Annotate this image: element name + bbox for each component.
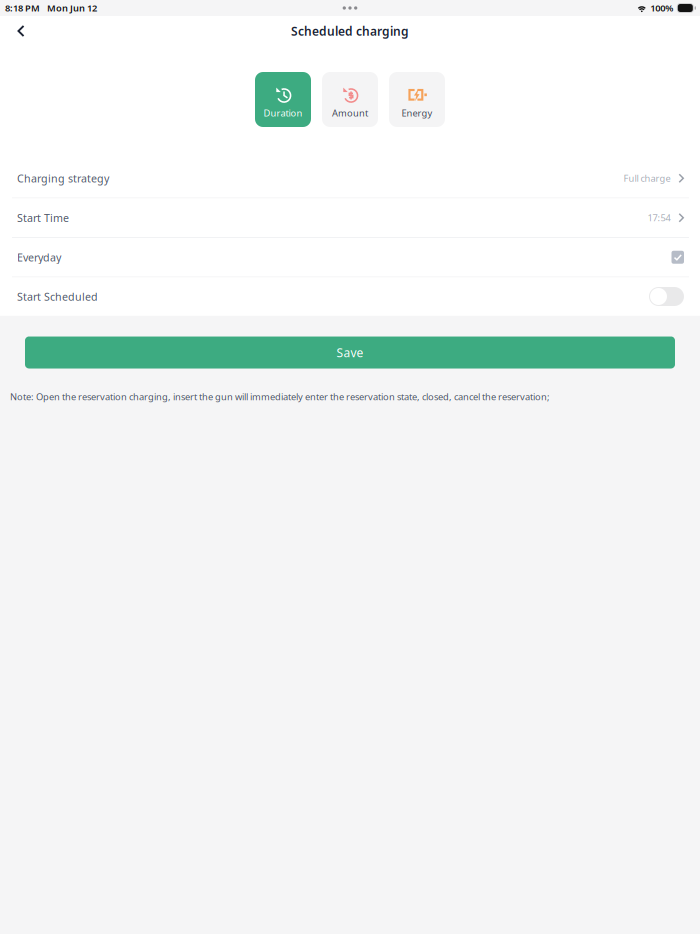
staticText: 100% xyxy=(650,2,673,14)
button[interactable]: Start Scheduled xyxy=(0,277,700,315)
staticText: 8:18 PM xyxy=(5,2,40,14)
button[interactable]: Back xyxy=(0,16,42,46)
staticText: Energy xyxy=(401,107,432,119)
button[interactable]: Everyday, on xyxy=(671,251,684,264)
button[interactable]: Save xyxy=(25,336,675,368)
button[interactable]: Start Time xyxy=(0,198,700,237)
staticText: Full charge xyxy=(623,172,670,184)
staticText: Start Scheduled xyxy=(17,289,98,304)
staticText: 17:54 xyxy=(647,212,670,224)
staticText: Start Time xyxy=(17,211,69,225)
button[interactable]: Charging strategy xyxy=(0,159,700,197)
button[interactable]: Energy xyxy=(389,72,445,127)
button[interactable]: Amount xyxy=(322,72,378,127)
staticText: Note: Open the reservation charging, ins… xyxy=(10,390,550,403)
staticText: Scheduled charging xyxy=(291,23,409,39)
button[interactable]: Duration xyxy=(255,72,311,127)
button[interactable]: Everyday xyxy=(0,238,700,276)
staticText: Charging strategy xyxy=(17,171,109,185)
button[interactable]: Start Scheduled, off xyxy=(649,287,684,306)
staticText: Amount xyxy=(332,107,368,119)
staticText: Mon Jun 12 xyxy=(47,2,97,14)
staticText: Duration xyxy=(263,107,302,119)
staticText: Save xyxy=(336,344,363,360)
staticText: Everyday xyxy=(17,250,61,264)
